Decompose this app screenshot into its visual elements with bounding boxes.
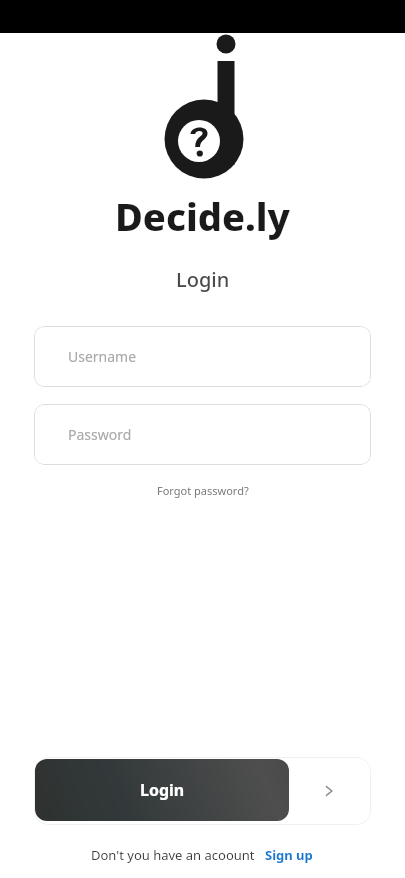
staticText: Username <box>68 347 137 366</box>
staticText: Login <box>140 779 185 801</box>
staticText: Don't you have an acoount <box>91 846 255 864</box>
button[interactable]: Forgot password? <box>149 480 257 501</box>
button[interactable]: Login <box>35 759 289 821</box>
staticText: Forgot password? <box>157 483 249 498</box>
staticText: Decide.ly <box>115 190 290 242</box>
button[interactable]: Username <box>34 326 371 387</box>
staticText: Login <box>176 266 230 293</box>
staticText: Sign up <box>265 846 313 864</box>
button[interactable]: Sign up <box>263 844 315 866</box>
staticText: Password <box>68 425 132 444</box>
button[interactable]: Continue <box>315 777 343 805</box>
button[interactable]: Password <box>34 404 371 465</box>
